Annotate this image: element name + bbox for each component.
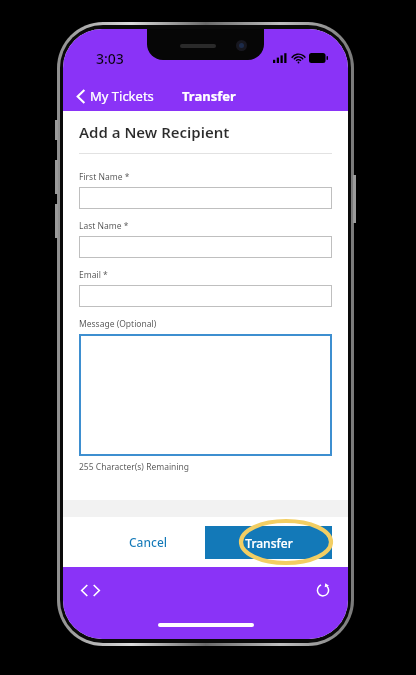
button[interactable]: Transfer [205,526,332,559]
staticText: Email * [79,269,108,281]
staticText: Message (Optional) [79,318,157,330]
staticText: First Name * [79,171,130,183]
button[interactable] [79,285,332,307]
staticText: 3:03 [96,49,124,68]
button[interactable] [79,187,332,209]
staticText: Add a New Recipient [79,122,230,142]
staticText: Last Name * [79,220,129,232]
button[interactable]: My Tickets [63,83,162,109]
staticText: Cancel [129,534,168,550]
button[interactable]: Navigate back and forward [77,581,104,600]
staticText: My Tickets [90,87,154,105]
staticText: Transfer [182,87,236,105]
staticText: Transfer [245,535,293,551]
button[interactable] [79,334,332,456]
button[interactable]: Cancel [115,526,182,558]
button[interactable] [79,236,332,258]
staticText: 255 Character(s) Remaining [79,461,190,473]
button[interactable]: Reload [312,579,334,601]
